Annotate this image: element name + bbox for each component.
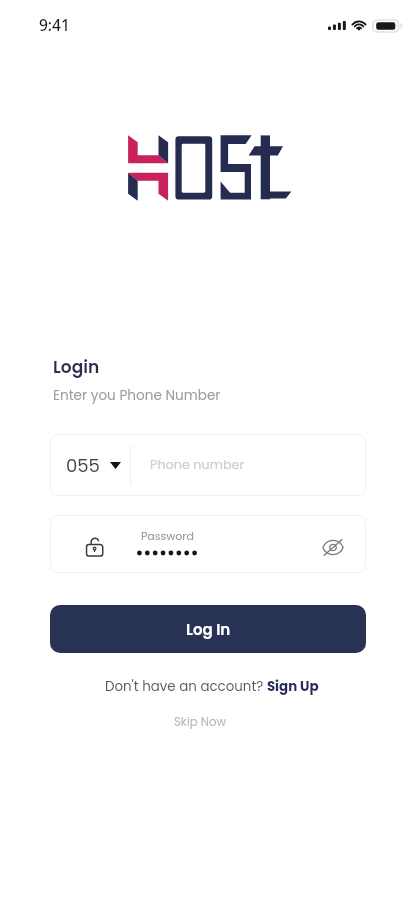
staticText: 055 bbox=[66, 453, 100, 478]
staticText: Enter you Phone Number bbox=[53, 386, 221, 405]
button[interactable]: Don't have an account? Sign Up bbox=[105, 677, 319, 696]
staticText: Login bbox=[53, 355, 100, 379]
button[interactable]: Show password bbox=[317, 528, 349, 560]
button[interactable]: 055 bbox=[50, 434, 366, 496]
staticText: 9:41 bbox=[39, 14, 70, 35]
button[interactable]: Password bbox=[50, 515, 366, 573]
button[interactable]: Log In bbox=[50, 605, 366, 653]
staticText: Phone number bbox=[150, 456, 245, 474]
button[interactable]: Skip Now bbox=[174, 714, 227, 730]
staticText: Log In bbox=[186, 619, 231, 640]
staticText: Password bbox=[141, 528, 194, 543]
